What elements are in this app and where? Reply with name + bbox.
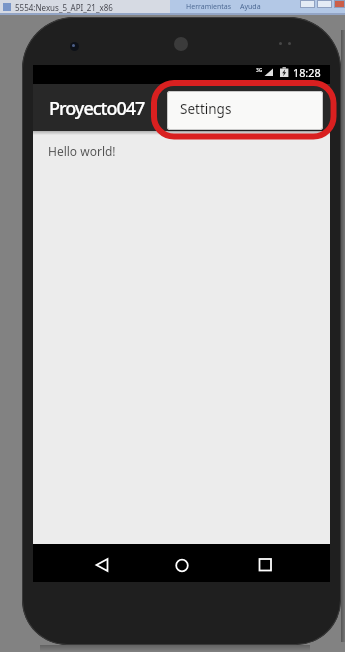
staticText: 3G xyxy=(256,67,263,74)
button[interactable] xyxy=(88,551,116,579)
staticText: 18:28 xyxy=(293,65,321,80)
button[interactable]: Ayuda xyxy=(240,2,261,12)
staticText: Settings xyxy=(180,100,232,118)
button[interactable] xyxy=(317,0,332,8)
button[interactable]: Herramientas xyxy=(186,2,232,12)
staticText: 5554:Nexus_5_API_21_x86 xyxy=(15,2,113,13)
button[interactable] xyxy=(334,0,345,8)
staticText: Proyecto047 xyxy=(49,96,145,121)
staticText: Hello world! xyxy=(48,143,116,159)
button[interactable] xyxy=(248,551,276,579)
button[interactable]: Settings xyxy=(167,91,323,130)
button[interactable]: Proyecto047 xyxy=(33,84,330,131)
button[interactable] xyxy=(300,0,315,8)
button[interactable] xyxy=(168,551,196,579)
